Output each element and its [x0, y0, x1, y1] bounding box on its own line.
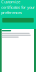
staticText: Customize certificates for your preferen…: [1, 0, 35, 15]
